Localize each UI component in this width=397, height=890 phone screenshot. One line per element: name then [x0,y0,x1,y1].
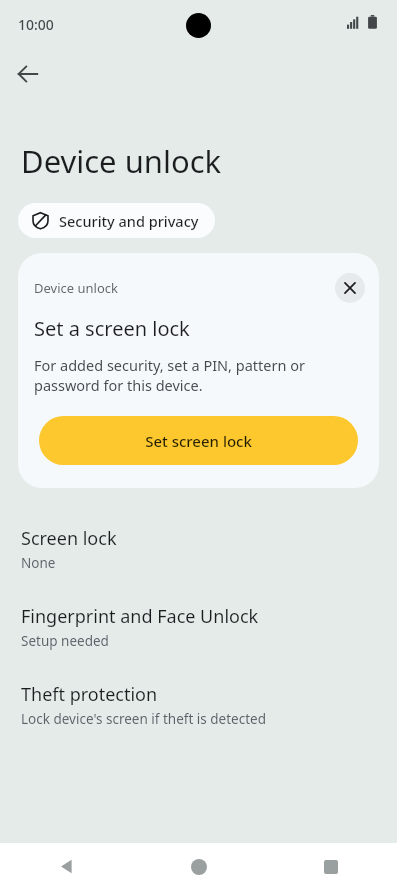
staticText: For added security, set a PIN, pattern o… [34,355,361,396]
button[interactable]: Close [335,273,365,303]
button[interactable]: Back [0,843,133,890]
staticText: Set screen lock [145,431,252,451]
staticText: None [21,554,56,572]
staticText: Lock device's screen if theft is detecte… [21,710,266,728]
button[interactable]: Theft protection [0,682,397,728]
staticText: Security and privacy [59,211,199,231]
button[interactable]: Fingerprint and Face Unlock [0,604,397,650]
staticText: Theft protection [21,682,158,707]
button[interactable]: Home [133,843,265,890]
button[interactable]: Security and privacy [18,203,215,238]
button[interactable]: Back [6,52,50,96]
button[interactable]: Recent apps [265,843,397,890]
staticText: Set a screen lock [34,315,190,342]
staticText: Device unlock [21,140,222,182]
staticText: Device unlock [34,279,335,297]
staticText: Screen lock [21,526,117,551]
staticText: 10:00 [18,15,54,34]
button[interactable]: Set screen lock [39,416,358,465]
staticText: Fingerprint and Face Unlock [21,604,259,629]
staticText: Setup needed [21,632,109,650]
button[interactable]: Screen lock [0,526,397,572]
